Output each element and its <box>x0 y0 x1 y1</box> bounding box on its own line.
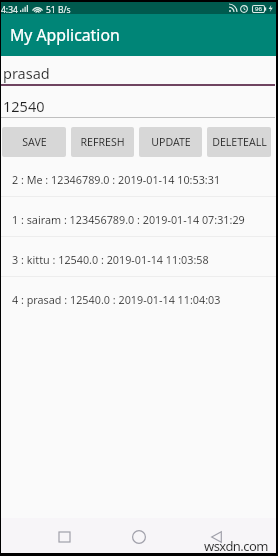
button[interactable]: 4 : prasad : 12540.0 : 2019-01-14 11:04:… <box>1 277 276 317</box>
button[interactable]: My Application <box>1 14 276 56</box>
staticText: 4:34 <box>1 4 18 16</box>
staticText: My Application <box>10 24 120 46</box>
staticText: 3 : kittu : 12540.0 : 2019-01-14 11:03:5… <box>12 252 209 267</box>
button[interactable]: Back <box>201 522 231 552</box>
staticText: wsxdn.com <box>204 537 268 555</box>
button[interactable]: SAVE <box>2 127 66 157</box>
staticText: 12540 <box>3 96 45 116</box>
button[interactable]: 1 : sairam : 123456789.0 : 2019-01-14 07… <box>1 197 276 237</box>
button[interactable]: Recent apps <box>49 522 79 552</box>
staticText: 2 : Me : 12346789.0 : 2019-01-14 10:53:3… <box>12 172 221 187</box>
staticText: DELETEALL <box>212 135 267 149</box>
button[interactable]: prasad <box>1 56 276 86</box>
staticText: prasad <box>3 63 50 83</box>
button[interactable]: Home <box>124 522 154 552</box>
button[interactable]: 3 : kittu : 12540.0 : 2019-01-14 11:03:5… <box>1 237 276 277</box>
button[interactable]: UPDATE <box>139 127 202 157</box>
staticText: UPDATE <box>151 135 191 149</box>
staticText: REFRESH <box>80 135 125 149</box>
button[interactable]: DELETEALL <box>207 127 271 157</box>
staticText: 51 B/s <box>46 4 71 16</box>
staticText: 1 : sairam : 123456789.0 : 2019-01-14 07… <box>12 212 245 227</box>
button[interactable]: 12540 <box>1 86 276 118</box>
button[interactable]: REFRESH <box>71 127 134 157</box>
staticText: SAVE <box>22 135 47 149</box>
button[interactable]: 2 : Me : 12346789.0 : 2019-01-14 10:53:3… <box>1 157 276 197</box>
staticText: 96 <box>255 5 262 13</box>
staticText: 4 : prasad : 12540.0 : 2019-01-14 11:04:… <box>12 292 221 307</box>
